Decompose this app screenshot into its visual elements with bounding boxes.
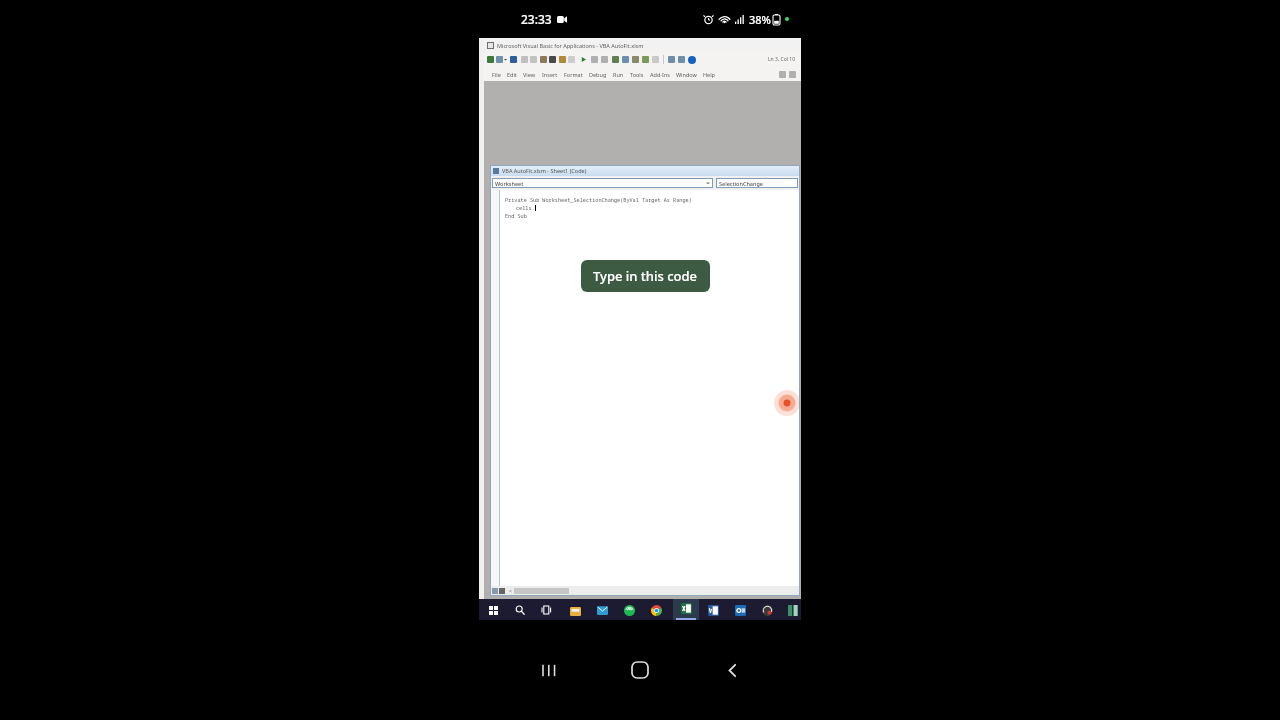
staticText: Ln 3, Col 10: [768, 56, 796, 63]
button[interactable]: Chrome: [647, 601, 665, 619]
staticText: <: [509, 588, 512, 595]
button[interactable]: Task view: [538, 601, 556, 619]
button[interactable]: Edit: [504, 71, 520, 78]
button[interactable]: Mail: [593, 601, 611, 619]
button[interactable]: Add-Ins: [647, 71, 673, 78]
button[interactable]: Run: [610, 71, 627, 78]
staticText: Add-Ins: [650, 71, 670, 78]
staticText: 38%: [749, 12, 771, 27]
button[interactable]: Word: [704, 601, 722, 619]
staticText: End Sub: [505, 212, 527, 219]
button[interactable]: Start: [484, 601, 502, 619]
button[interactable]: Excel: [673, 599, 699, 620]
button[interactable]: Debug: [586, 71, 610, 78]
staticText: Debug: [589, 71, 607, 78]
button[interactable]: SelectionChange: [716, 178, 798, 188]
staticText: SelectionChange: [719, 180, 764, 187]
staticText: Help: [703, 71, 715, 78]
staticText: Insert: [542, 71, 558, 78]
staticText: Tools: [630, 71, 644, 78]
staticText: Window: [676, 71, 697, 78]
button[interactable]: Help: [700, 71, 718, 78]
staticText: Microsoft Visual Basic for Applications …: [497, 42, 644, 49]
button[interactable]: Home: [618, 648, 662, 692]
staticText: Format: [564, 71, 583, 78]
staticText: Run: [613, 71, 624, 78]
button[interactable]: Outlook: [731, 601, 749, 619]
button[interactable]: Back: [710, 648, 754, 692]
button[interactable]: Recorder: [758, 601, 776, 619]
button[interactable]: Type in this code: [581, 260, 710, 292]
button[interactable]: Tools: [627, 71, 647, 78]
button[interactable]: File: [489, 71, 504, 78]
staticText: VBA AutoFit.xlsm - Sheet1 (Code): [502, 167, 587, 174]
button[interactable]: Window: [673, 71, 700, 78]
button[interactable]: Format: [561, 71, 586, 78]
button[interactable]: Recent apps: [527, 648, 571, 692]
staticText: cells.: [516, 204, 535, 211]
button[interactable]: Search: [511, 601, 529, 619]
button[interactable]: View: [520, 71, 539, 78]
button[interactable]: Spotify: [620, 601, 638, 619]
button[interactable]: App: [785, 601, 801, 619]
staticText: Private Sub Worksheet_SelectionChange(By…: [505, 196, 692, 203]
staticText: Worksheet: [495, 180, 524, 187]
button[interactable]: Worksheet: [492, 178, 713, 188]
button[interactable]: Insert: [539, 71, 561, 78]
staticText: Type in this code: [593, 267, 698, 285]
staticText: View: [523, 71, 536, 78]
button[interactable]: File Explorer: [566, 601, 584, 619]
staticText: File: [492, 71, 501, 78]
staticText: 23:33: [521, 11, 552, 27]
staticText: Edit: [507, 71, 517, 78]
